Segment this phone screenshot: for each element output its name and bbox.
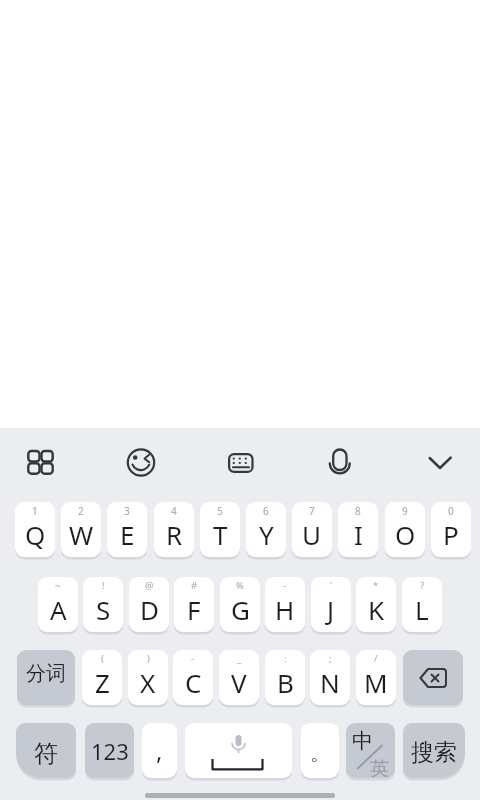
staticText: I xyxy=(354,517,363,552)
button[interactable]: I xyxy=(338,502,378,557)
staticText: Q xyxy=(25,517,46,552)
button[interactable] xyxy=(329,448,351,475)
button[interactable]: E xyxy=(107,502,147,557)
button[interactable]: U xyxy=(292,502,332,557)
staticText: P xyxy=(443,517,459,552)
staticText: 5 xyxy=(217,504,223,518)
button[interactable] xyxy=(127,448,156,477)
button[interactable] xyxy=(228,453,254,474)
button[interactable]: R xyxy=(154,502,194,557)
button[interactable]: A xyxy=(38,577,78,632)
staticText: S xyxy=(96,592,111,627)
staticText: ! xyxy=(102,579,105,592)
button[interactable]: V xyxy=(219,650,259,705)
staticText: O xyxy=(395,517,416,552)
staticText: - xyxy=(283,579,287,592)
button[interactable] xyxy=(403,650,463,705)
staticText: 6 xyxy=(263,504,269,518)
staticText: @ xyxy=(145,579,154,592)
staticText: X xyxy=(140,665,156,700)
staticText: 英 xyxy=(370,757,389,781)
button[interactable]: S xyxy=(83,577,123,632)
staticText: 2 xyxy=(78,504,84,518)
staticText: D xyxy=(140,592,159,627)
button[interactable]: K xyxy=(356,577,396,632)
staticText: ' xyxy=(330,579,333,592)
staticText: * xyxy=(373,579,379,592)
staticText: E xyxy=(120,517,135,552)
staticText: 123 xyxy=(91,736,129,766)
staticText: ( xyxy=(101,652,104,665)
staticText: W xyxy=(69,517,94,552)
button[interactable]: G xyxy=(220,577,260,632)
staticText: / xyxy=(374,652,378,665)
button[interactable]: 符 xyxy=(16,723,76,778)
staticText: , xyxy=(156,734,163,767)
button[interactable]: Y xyxy=(246,502,286,557)
staticText: L xyxy=(415,592,429,627)
staticText: R xyxy=(166,517,183,552)
staticText: 8 xyxy=(355,504,361,518)
button[interactable] xyxy=(185,723,292,778)
staticText: 0 xyxy=(448,504,454,518)
button[interactable]: T xyxy=(200,502,240,557)
staticText: H xyxy=(275,592,295,627)
staticText: 分词 xyxy=(26,661,66,686)
button[interactable]: B xyxy=(265,650,305,705)
button[interactable]: 中 xyxy=(346,723,395,778)
staticText: : xyxy=(284,652,287,665)
button[interactable]: 搜索 xyxy=(403,723,465,778)
staticText: - xyxy=(191,652,195,665)
button[interactable]: J xyxy=(311,577,351,632)
staticText: % xyxy=(236,579,244,592)
button[interactable]: D xyxy=(129,577,169,632)
staticText: # xyxy=(191,579,198,592)
staticText: ; xyxy=(329,652,332,665)
staticText: C xyxy=(185,665,202,700)
staticText: T xyxy=(213,517,228,552)
staticText: M xyxy=(364,665,388,700)
button[interactable]: H xyxy=(265,577,305,632)
button[interactable]: , xyxy=(142,723,177,778)
staticText: _ xyxy=(237,652,242,665)
staticText: V xyxy=(231,665,247,700)
staticText: B xyxy=(277,665,294,700)
button[interactable]: L xyxy=(402,577,442,632)
button[interactable] xyxy=(26,449,55,476)
button[interactable]: 。 xyxy=(301,723,339,778)
staticText: N xyxy=(320,665,340,700)
staticText: G xyxy=(231,592,250,627)
staticText: 9 xyxy=(402,504,408,518)
staticText: 搜索 xyxy=(411,738,457,767)
staticText: ) xyxy=(147,652,150,665)
staticText: 符 xyxy=(34,739,58,769)
button[interactable]: O xyxy=(385,502,425,557)
staticText: J xyxy=(327,592,335,627)
staticText: K xyxy=(368,592,385,627)
staticText: U xyxy=(302,517,322,552)
button[interactable]: 123 xyxy=(85,723,134,778)
staticText: 中 xyxy=(352,728,373,754)
button[interactable]: M xyxy=(356,650,396,705)
button[interactable]: N xyxy=(310,650,350,705)
staticText: ~ xyxy=(55,579,61,592)
button[interactable]: Q xyxy=(15,502,55,557)
button[interactable]: 分词 xyxy=(17,650,75,705)
staticText: 7 xyxy=(309,504,315,518)
staticText: 。 xyxy=(310,741,330,766)
staticText: F xyxy=(187,592,201,627)
button[interactable]: X xyxy=(128,650,168,705)
staticText: 4 xyxy=(171,504,177,518)
button[interactable]: W xyxy=(61,502,101,557)
staticText: ? xyxy=(420,579,425,592)
staticText: Y xyxy=(259,517,274,552)
staticText: A xyxy=(50,592,67,627)
staticText: 1 xyxy=(32,504,38,518)
button[interactable] xyxy=(427,455,453,471)
button[interactable]: C xyxy=(173,650,213,705)
button[interactable]: F xyxy=(174,577,214,632)
staticText: 3 xyxy=(124,504,130,518)
button[interactable]: P xyxy=(431,502,471,557)
button[interactable]: Z xyxy=(82,650,122,705)
staticText: Z xyxy=(95,665,110,700)
